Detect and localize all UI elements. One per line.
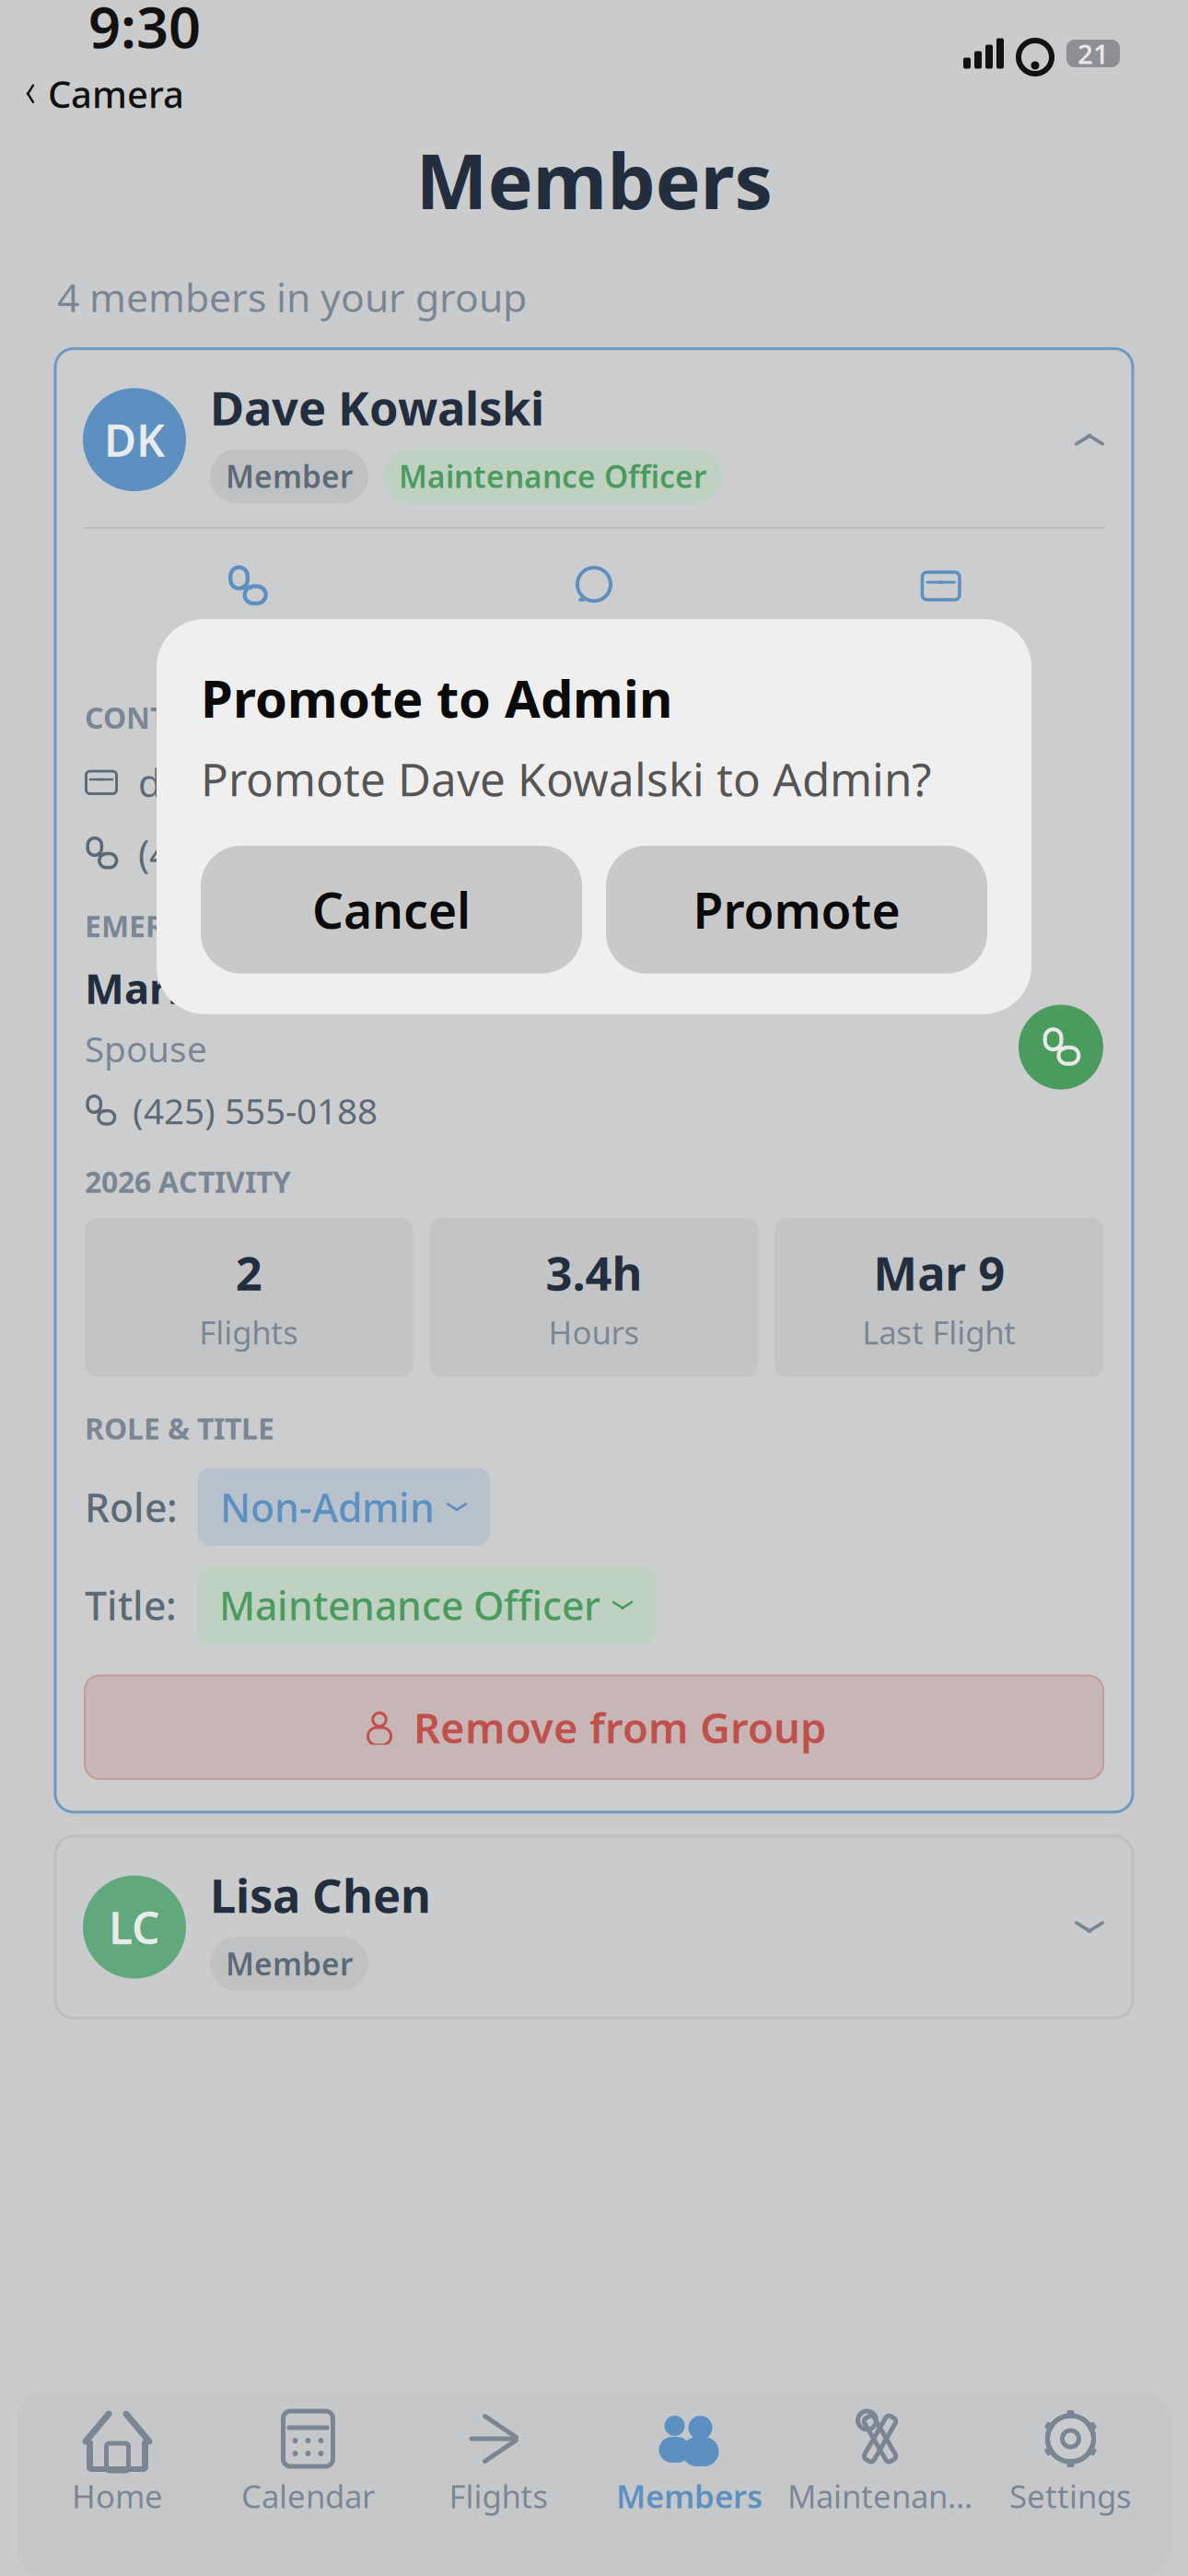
staticText: Role: [85, 1481, 178, 1533]
staticText: Maintenance Officer [219, 1579, 600, 1631]
button[interactable]: Email [767, 560, 1114, 670]
staticText: Remove from Group [413, 1699, 826, 1755]
staticText: Flights [199, 1311, 299, 1353]
staticText: Cancel [312, 877, 471, 942]
button[interactable]: Maintenan... [785, 2392, 975, 2517]
button[interactable]: Cancel [201, 846, 582, 974]
staticText: CONTACT [85, 698, 221, 737]
staticText: Non-Admin [220, 1481, 435, 1533]
staticText: 4 members in your group [57, 271, 527, 323]
staticText: Members [616, 2475, 763, 2517]
button[interactable]: Members [594, 2392, 785, 2517]
button[interactable]: Remove from Group [85, 1676, 1103, 1779]
staticText: (425) 555-0267 [138, 828, 403, 879]
staticText: Text [558, 617, 630, 665]
staticText: Calendar [241, 2475, 375, 2517]
staticText: Last Flight [862, 1311, 1016, 1353]
staticText: Dave Kowalski [210, 376, 544, 438]
staticText: 21 [1077, 35, 1109, 71]
staticText: EMERGENCY CONTACT [85, 906, 408, 945]
staticText: Maintenance Officer [399, 456, 706, 497]
button[interactable]: Call [74, 560, 421, 670]
staticText: Mar 9 [873, 1241, 1005, 1303]
staticText: Promote [693, 877, 900, 942]
staticText: Home [72, 2475, 163, 2517]
staticText: DK [104, 410, 165, 469]
button[interactable]: LC [55, 1836, 1133, 2018]
staticText: Promote to Admin [201, 663, 672, 732]
staticText: Lisa Chen [210, 1864, 431, 1926]
staticText: Member [226, 456, 353, 497]
button[interactable]: DK [55, 349, 1133, 527]
button[interactable]: Calendar [213, 2392, 403, 2517]
staticText: Hours [548, 1311, 640, 1353]
staticText: Email [893, 617, 989, 665]
staticText: (425) 555-0188 [133, 1087, 378, 1134]
staticText: Members [416, 129, 772, 230]
staticText: Call [215, 617, 279, 665]
staticText: 2 [236, 1241, 262, 1303]
button[interactable]: Call emergency contact [1019, 1005, 1103, 1089]
button[interactable]: Non-Admin [198, 1468, 490, 1546]
staticText: Title: [85, 1579, 177, 1631]
staticText: Maintenan... [787, 2475, 973, 2517]
button[interactable]: Home [22, 2392, 213, 2517]
staticText: ROLE & TITLE [85, 1409, 274, 1448]
button[interactable]: Text [421, 560, 768, 670]
staticText: Promote Dave Kowalski to Admin? [201, 748, 931, 809]
staticText: Member [226, 1943, 353, 1984]
button[interactable]: Settings [975, 2392, 1166, 2517]
staticText: Marie Kowalski [85, 960, 402, 1016]
staticText: Spouse [85, 1025, 207, 1072]
staticText: 2026 ACTIVITY [85, 1162, 291, 1201]
staticText: Flights [449, 2475, 548, 2517]
button[interactable]: Flights [403, 2392, 594, 2517]
staticText: Camera [48, 69, 184, 118]
staticText: 9:30 [88, 0, 201, 64]
button[interactable]: Maintenance Officer [197, 1566, 656, 1644]
staticText: dave.kowalski@email.com [138, 757, 605, 808]
button[interactable]: Promote [606, 846, 987, 974]
staticText: LC [109, 1898, 160, 1956]
staticText: 3.4h [546, 1241, 642, 1303]
staticText: Settings [1009, 2475, 1132, 2517]
